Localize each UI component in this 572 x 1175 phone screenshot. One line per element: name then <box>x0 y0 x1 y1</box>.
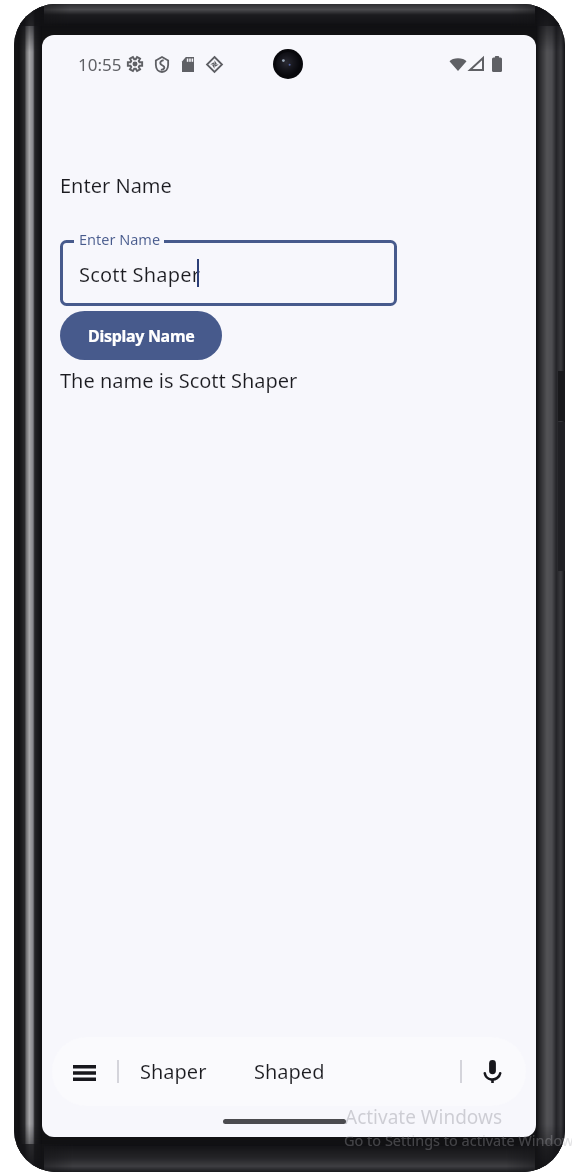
button[interactable]: Shaper <box>140 1058 207 1085</box>
staticText: Scott Shaper <box>79 261 201 288</box>
staticText: Enter Name <box>79 229 161 249</box>
staticText: 10:55 <box>78 53 122 76</box>
staticText: Enter Name <box>60 172 172 199</box>
staticText: Display Name <box>88 325 195 347</box>
staticText: Go to Settings to activate Windows <box>344 1130 572 1150</box>
button[interactable]: Voice input <box>476 1053 509 1090</box>
staticText: Shaper <box>140 1058 207 1085</box>
button[interactable]: Keyboard menu <box>66 1055 102 1091</box>
button[interactable]: Shaped <box>254 1058 325 1085</box>
staticText: Shaped <box>254 1058 325 1085</box>
staticText: The name is Scott Shaper <box>60 367 298 394</box>
button[interactable]: Display Name <box>60 311 222 360</box>
staticText: Activate Windows <box>345 1104 502 1130</box>
